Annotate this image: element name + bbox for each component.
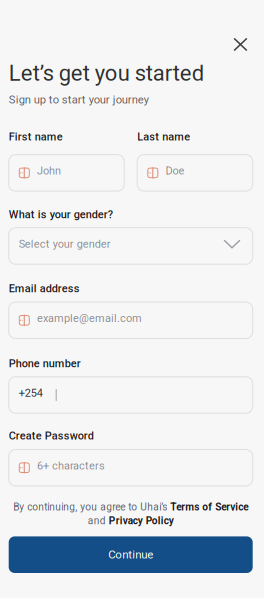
- staticText: By continuing, you agree to Uhai’s: [13, 501, 170, 513]
- staticText: John: [37, 164, 61, 177]
- staticText: Create Password: [9, 429, 94, 442]
- button[interactable]: Close: [228, 32, 253, 56]
- staticText: +254: [19, 387, 43, 399]
- staticText: Terms of Service: [170, 501, 248, 513]
- staticText: Let’s get you started: [9, 60, 204, 86]
- staticText: Last name: [137, 130, 190, 143]
- staticText: example@email.com: [37, 312, 142, 325]
- staticText: Doe: [165, 164, 184, 177]
- staticText: and: [88, 515, 109, 527]
- staticText: First name: [9, 130, 63, 143]
- staticText: Privacy Policy: [109, 515, 174, 527]
- staticText: Phone number: [9, 357, 81, 370]
- staticText: Select your gender: [19, 238, 111, 250]
- staticText: Sign up to start your journey: [9, 93, 149, 106]
- staticText: Email address: [9, 282, 80, 295]
- staticText: What is your gender?: [9, 208, 113, 221]
- staticText: Continue: [108, 548, 153, 561]
- button[interactable]: Continue: [9, 536, 253, 573]
- staticText: 6+ characters: [37, 459, 105, 472]
